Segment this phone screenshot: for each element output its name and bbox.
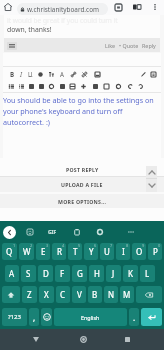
button[interactable]: Numbered list xyxy=(16,81,26,91)
button[interactable]: Insert link xyxy=(68,69,78,79)
button[interactable]: Z xyxy=(22,286,37,303)
button[interactable]: G xyxy=(72,265,87,282)
button[interactable]: Settings xyxy=(94,226,106,238)
button[interactable]: More options xyxy=(148,0,162,14)
button[interactable]: Tabs xyxy=(111,0,125,14)
staticText: 2 xyxy=(30,243,33,248)
button[interactable]: Backspace xyxy=(136,286,162,303)
button[interactable]: J xyxy=(106,265,121,282)
button[interactable]: M xyxy=(120,286,134,303)
button[interactable]: Next field xyxy=(146,179,157,192)
button[interactable]: Like xyxy=(105,42,116,49)
staticText: B xyxy=(92,289,98,300)
button[interactable]: Redo xyxy=(135,81,145,91)
button[interactable]: D xyxy=(38,265,53,282)
button[interactable]: Home xyxy=(1,0,15,14)
button[interactable]: MORE OPTIONS... xyxy=(0,194,164,209)
button[interactable]: Q xyxy=(2,243,17,260)
button[interactable]: POST REPLY xyxy=(0,158,164,176)
staticText: GIF xyxy=(48,229,57,236)
button[interactable]: P xyxy=(148,243,162,260)
button[interactable]: Clear formatting xyxy=(113,81,123,91)
staticText: X xyxy=(44,289,49,300)
button[interactable]: • Quote xyxy=(119,42,139,49)
button[interactable]: Indent xyxy=(26,81,36,91)
button[interactable]: H xyxy=(89,265,104,282)
staticText: MORE OPTIONS... xyxy=(58,198,107,205)
button[interactable]: Insert video xyxy=(57,81,67,91)
button[interactable]: Outdent xyxy=(36,81,46,91)
button[interactable]: Y xyxy=(84,243,98,260)
button[interactable]: R xyxy=(52,243,66,260)
staticText: S xyxy=(26,268,31,279)
button[interactable]: T xyxy=(68,243,82,260)
button[interactable]: F xyxy=(55,265,70,282)
staticText: 4 xyxy=(62,243,65,248)
staticText: You should be able to go into the settin… xyxy=(3,95,159,127)
button[interactable]: Recent apps xyxy=(115,329,140,350)
button[interactable]: Previous field xyxy=(146,166,157,178)
button[interactable]: N xyxy=(104,286,118,303)
button[interactable]: Remove link xyxy=(79,69,89,79)
staticText: UPLOAD A FILE xyxy=(61,181,103,188)
button[interactable]: B xyxy=(7,69,17,79)
staticText: 6 xyxy=(94,243,97,248)
button[interactable]: UPLOAD A FILE xyxy=(0,177,164,192)
staticText: T xyxy=(73,246,78,257)
button[interactable]: Spoiler xyxy=(90,81,100,91)
button[interactable]: O xyxy=(132,243,146,260)
button[interactable]: More xyxy=(125,226,137,238)
button[interactable]: Reply xyxy=(142,42,156,49)
button[interactable]: Back xyxy=(23,329,48,350)
button[interactable]: Clipboard xyxy=(71,226,83,238)
button[interactable]: w.christianityboard.com xyxy=(17,3,108,15)
button[interactable]: Preview xyxy=(148,69,158,79)
button[interactable]: S xyxy=(21,265,36,282)
button[interactable]: Shift xyxy=(2,286,20,303)
button[interactable]: Reading list xyxy=(130,0,144,14)
staticText: , xyxy=(33,312,36,323)
button[interactable]: I xyxy=(116,243,130,260)
button[interactable]: Undo xyxy=(125,81,135,91)
button[interactable]: C xyxy=(56,286,70,303)
button[interactable]: Insert image xyxy=(92,69,102,79)
button[interactable]: ?123 xyxy=(2,308,27,326)
button[interactable]: A xyxy=(57,69,67,79)
button[interactable]: A xyxy=(5,265,19,282)
button[interactable]: , xyxy=(29,308,39,326)
staticText: H xyxy=(94,268,100,279)
button[interactable]: Stickers xyxy=(24,226,36,238)
staticText: it would be great if you could turn it xyxy=(7,16,118,25)
button[interactable]: X xyxy=(39,286,54,303)
button[interactable]: Insert xyxy=(78,81,88,91)
staticText: E xyxy=(41,246,46,257)
button[interactable]: . xyxy=(129,308,139,326)
button[interactable]: Text colour xyxy=(35,69,45,79)
button[interactable]: W xyxy=(19,243,34,260)
button[interactable]: Home xyxy=(71,329,96,350)
button[interactable]: English xyxy=(54,308,127,326)
button[interactable]: Draft xyxy=(138,69,148,79)
button[interactable]: Font size xyxy=(46,69,56,79)
staticText: W xyxy=(23,246,31,257)
staticText: J xyxy=(112,268,115,279)
button[interactable]: U xyxy=(100,243,114,260)
button[interactable]: Horizontal rule xyxy=(46,81,56,91)
button[interactable]: Attachment xyxy=(101,81,111,91)
button[interactable]: Emoji xyxy=(41,308,52,326)
staticText: O xyxy=(136,246,143,257)
button[interactable]: K xyxy=(123,265,138,282)
button[interactable]: V xyxy=(72,286,86,303)
button[interactable]: I xyxy=(16,69,26,79)
button[interactable]: U xyxy=(25,69,35,79)
button[interactable]: B xyxy=(88,286,102,303)
button[interactable]: E xyxy=(36,243,50,260)
staticText: C xyxy=(60,289,66,300)
button[interactable]: L xyxy=(140,265,155,282)
button[interactable]: Insert table xyxy=(67,81,77,91)
button[interactable]: Post menu xyxy=(7,42,17,50)
button[interactable]: Collapse toolbar xyxy=(3,226,16,239)
button[interactable]: Bulleted list xyxy=(6,81,16,91)
button[interactable]: Enter xyxy=(141,308,162,326)
button[interactable]: GIF xyxy=(46,226,58,238)
